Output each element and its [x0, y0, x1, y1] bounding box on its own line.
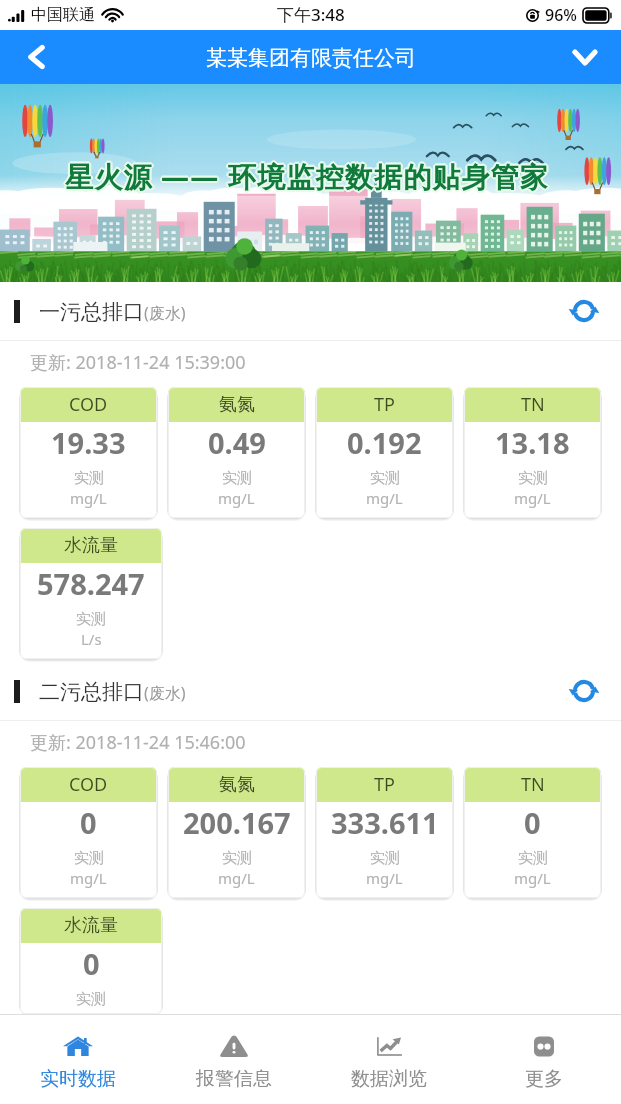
staticText: 实测 — [74, 469, 104, 488]
button[interactable]: Refresh — [559, 286, 609, 336]
staticText: 星火源 —— 环境监控数据的贴身管家 — [67, 157, 552, 195]
staticText: 星火源 —— 环境监控数据的贴身管家 — [64, 156, 549, 194]
staticText: mg/L — [514, 868, 551, 888]
staticText: 578.247 — [37, 564, 145, 603]
button[interactable]: Back — [0, 30, 72, 84]
staticText: 96% — [545, 4, 577, 26]
staticText: 实测 — [222, 849, 252, 868]
button[interactable]: 水流量 — [20, 908, 162, 1014]
button[interactable]: 报警信息 — [156, 1015, 311, 1104]
staticText: 实测 — [76, 990, 106, 1009]
staticText: 中国联通 — [31, 5, 95, 25]
staticText: 0 — [524, 803, 541, 842]
staticText: 星火源 —— 环境监控数据的贴身管家 — [63, 157, 548, 195]
staticText: 一污总排口 — [39, 299, 144, 325]
staticText: L/s — [81, 629, 102, 649]
staticText: 某某集团有限责任公司 — [206, 45, 416, 71]
staticText: 333.611 — [331, 803, 439, 842]
staticText: mg/L — [70, 488, 107, 508]
staticText: 氨氮 — [219, 393, 255, 416]
staticText: 星火源 —— 环境监控数据的贴身管家 — [65, 159, 550, 197]
staticText: 数据浏览 — [351, 1067, 427, 1091]
button[interactable]: TP — [316, 767, 453, 898]
staticText: TP — [374, 772, 395, 797]
staticText: mg/L — [366, 488, 403, 508]
staticText: 更新: 2018-11-24 15:39:00 — [30, 350, 246, 375]
staticText: TP — [374, 392, 395, 417]
staticText: 0.192 — [347, 423, 422, 462]
staticText: TN — [521, 392, 545, 417]
button[interactable]: 数据浏览 — [311, 1015, 466, 1104]
button[interactable]: 一污总排口 — [0, 282, 621, 340]
staticText: 下午3:48 — [277, 3, 345, 26]
staticText: mg/L — [70, 868, 107, 888]
staticText: mg/L — [514, 488, 551, 508]
staticText: 星火源 —— 环境监控数据的贴身管家 — [65, 155, 550, 193]
staticText: 0.49 — [208, 423, 266, 462]
button[interactable]: COD — [20, 767, 157, 898]
button[interactable]: 氨氮 — [168, 767, 305, 898]
staticText: 0 — [80, 803, 97, 842]
staticText: 氨氮 — [219, 773, 255, 796]
staticText: 实测 — [222, 469, 252, 488]
button[interactable]: Expand — [549, 30, 621, 84]
staticText: TN — [521, 772, 545, 797]
button[interactable]: TN — [464, 387, 601, 518]
button[interactable]: 实时数据 — [0, 1015, 156, 1104]
staticText: 19.33 — [51, 423, 126, 462]
button[interactable]: 更多 — [466, 1015, 621, 1104]
staticText: 200.167 — [183, 803, 291, 842]
staticText: 水流量 — [64, 534, 118, 557]
staticText: (废水) — [144, 302, 186, 324]
staticText: COD — [69, 772, 108, 797]
staticText: 实测 — [518, 849, 548, 868]
button[interactable]: 水流量 — [20, 528, 162, 659]
staticText: 0 — [83, 944, 100, 983]
staticText: (废水) — [144, 682, 186, 704]
staticText: 星火源 —— 环境监控数据的贴身管家 — [65, 157, 550, 195]
button[interactable]: 二污总排口 — [0, 662, 621, 720]
staticText: L/s — [81, 1009, 102, 1014]
staticText: mg/L — [366, 868, 403, 888]
staticText: 更新: 2018-11-24 15:46:00 — [30, 730, 246, 755]
staticText: 实时数据 — [40, 1067, 116, 1091]
staticText: COD — [69, 392, 108, 417]
staticText: 实测 — [370, 469, 400, 488]
staticText: 二污总排口 — [39, 679, 144, 705]
staticText: 实测 — [518, 469, 548, 488]
staticText: 星火源 —— 环境监控数据的贴身管家 — [66, 156, 551, 194]
staticText: 实测 — [74, 849, 104, 868]
staticText: 13.18 — [495, 423, 570, 462]
button[interactable]: TN — [464, 767, 601, 898]
staticText: 更多 — [525, 1067, 563, 1091]
button[interactable]: 氨氮 — [168, 387, 305, 518]
button[interactable]: COD — [20, 387, 157, 518]
staticText: 实测 — [76, 610, 106, 629]
staticText: 实测 — [370, 849, 400, 868]
staticText: 水流量 — [64, 914, 118, 937]
staticText: mg/L — [218, 868, 255, 888]
staticText: 星火源 —— 环境监控数据的贴身管家 — [64, 158, 549, 196]
staticText: 星火源 —— 环境监控数据的贴身管家 — [66, 158, 551, 196]
button[interactable]: Refresh — [559, 666, 609, 716]
staticText: mg/L — [218, 488, 255, 508]
button[interactable]: TP — [316, 387, 453, 518]
staticText: 报警信息 — [196, 1067, 272, 1091]
